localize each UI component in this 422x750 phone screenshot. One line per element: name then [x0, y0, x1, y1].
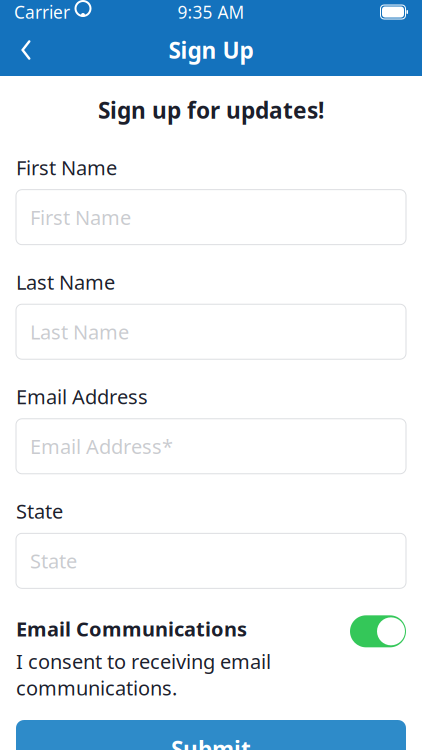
- button[interactable]: Email Address*: [16, 419, 406, 474]
- staticText: First Name: [30, 204, 131, 230]
- staticText: Submit: [171, 734, 251, 750]
- staticText: Email Communications: [16, 615, 247, 642]
- staticText: Sign up for updates!: [98, 95, 324, 125]
- button[interactable]: Last Name: [16, 304, 406, 359]
- button[interactable]: Email Communications: [350, 615, 406, 647]
- staticText: Sign Up: [168, 35, 253, 65]
- staticText: Last Name: [16, 269, 115, 295]
- staticText: 9:35 AM: [177, 0, 244, 23]
- staticText: I consent to receiving email communicati…: [16, 648, 271, 701]
- button[interactable]: First Name: [16, 190, 406, 245]
- button[interactable]: Submit: [16, 720, 406, 750]
- staticText: Email Address*: [30, 433, 173, 460]
- staticText: Email Address: [16, 383, 148, 410]
- staticText: State: [30, 548, 77, 574]
- button[interactable]: State: [16, 533, 406, 588]
- button[interactable]: Back: [4, 28, 48, 72]
- staticText: State: [16, 498, 63, 524]
- staticText: Carrier: [14, 0, 70, 23]
- staticText: Last Name: [30, 318, 129, 345]
- staticText: First Name: [16, 154, 117, 181]
